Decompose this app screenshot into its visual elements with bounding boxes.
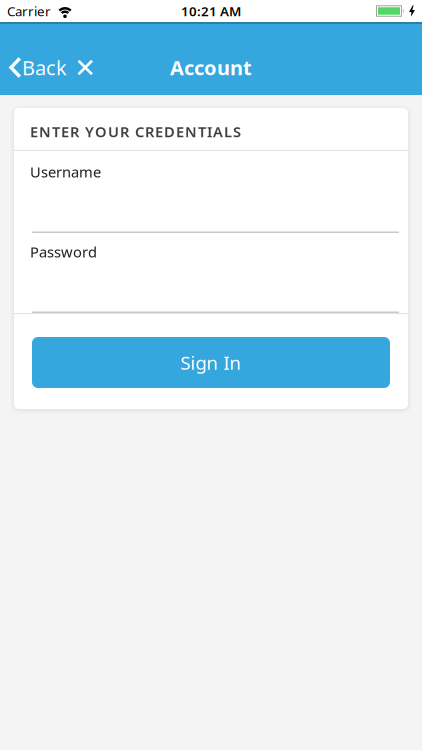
button[interactable] <box>67 59 93 76</box>
staticText: Sign In <box>180 350 241 375</box>
staticText: E N T E R Y O U R C R E D E N T I A L S <box>30 122 241 141</box>
button[interactable]: Back <box>0 54 67 81</box>
button[interactable]: Username <box>14 151 408 233</box>
staticText: Password <box>30 242 97 261</box>
staticText: Username <box>30 162 101 181</box>
staticText: Account <box>170 54 252 81</box>
button[interactable]: Sign In <box>32 337 390 388</box>
button[interactable]: Password <box>14 233 408 313</box>
staticText: Carrier <box>7 2 51 20</box>
staticText: Back <box>22 54 67 81</box>
staticText: 10:21 AM <box>181 2 241 20</box>
